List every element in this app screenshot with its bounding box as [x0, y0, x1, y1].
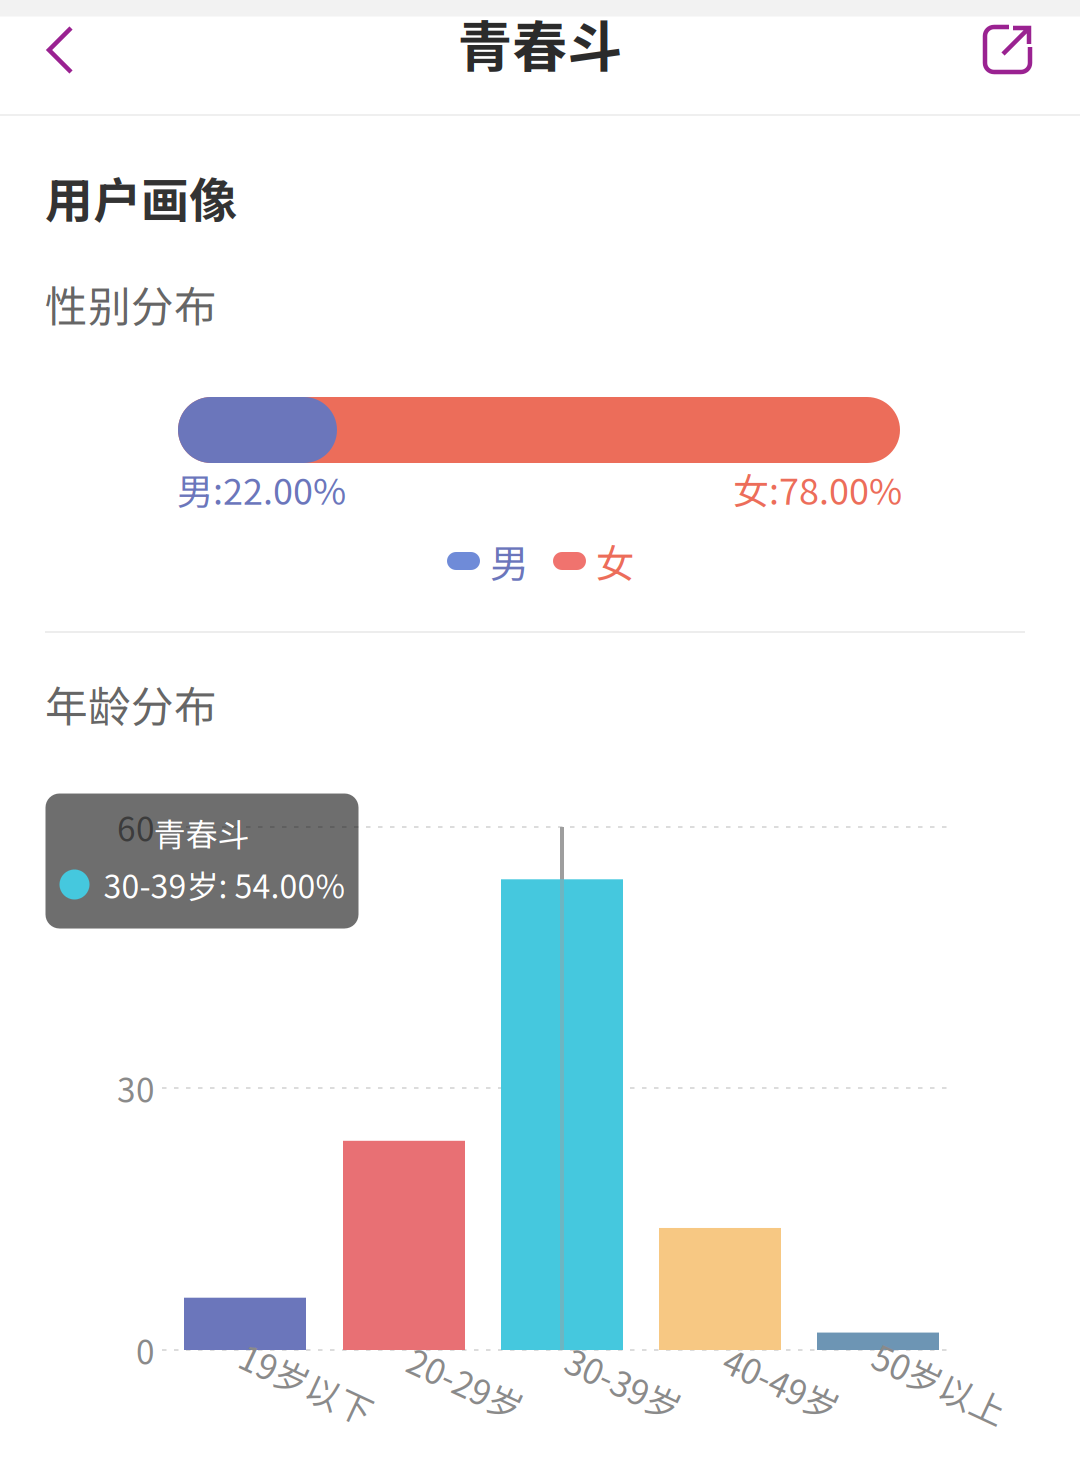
button[interactable]: 分享: [953, 0, 1063, 100]
staticText: 女:78.00%: [733, 463, 902, 515]
staticText: 男: [490, 533, 529, 589]
staticText: 20-29岁: [404, 1358, 527, 1408]
staticText: 年龄分布: [45, 673, 217, 735]
staticText: 50岁以上: [868, 1358, 1011, 1408]
staticText: 0: [136, 1326, 155, 1374]
staticText: 男:22.00%: [177, 463, 346, 515]
staticText: 青春斗: [457, 3, 622, 83]
button[interactable]: 返回: [5, 0, 115, 100]
staticText: 用户画像: [45, 162, 237, 232]
staticText: 青春斗: [153, 809, 249, 856]
staticText: 30-39岁: [562, 1358, 685, 1408]
staticText: 女: [596, 533, 635, 589]
staticText: 30: [117, 1064, 155, 1112]
staticText: 19岁以下: [235, 1358, 378, 1408]
staticText: 40-49岁: [720, 1358, 843, 1408]
staticText: 60: [117, 803, 155, 851]
staticText: 性别分布: [45, 273, 217, 335]
staticText: 30-39岁: 54.00%: [103, 861, 344, 908]
